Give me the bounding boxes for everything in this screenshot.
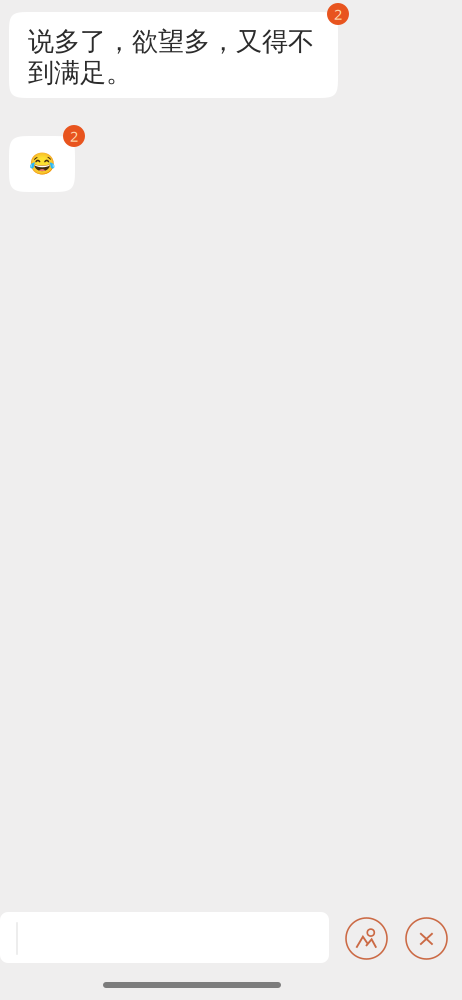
button[interactable]: 说多了，欲望多，又得不到满足。	[9, 3, 349, 98]
staticText: 😂	[28, 151, 55, 176]
staticText: 说多了，欲望多，又得不到满足。	[28, 26, 314, 89]
button[interactable]: Photos	[346, 918, 387, 959]
button[interactable]: Close	[406, 918, 447, 959]
button[interactable]: 😂	[9, 125, 85, 192]
staticText: 2	[334, 4, 342, 24]
staticText: 2	[70, 126, 78, 146]
